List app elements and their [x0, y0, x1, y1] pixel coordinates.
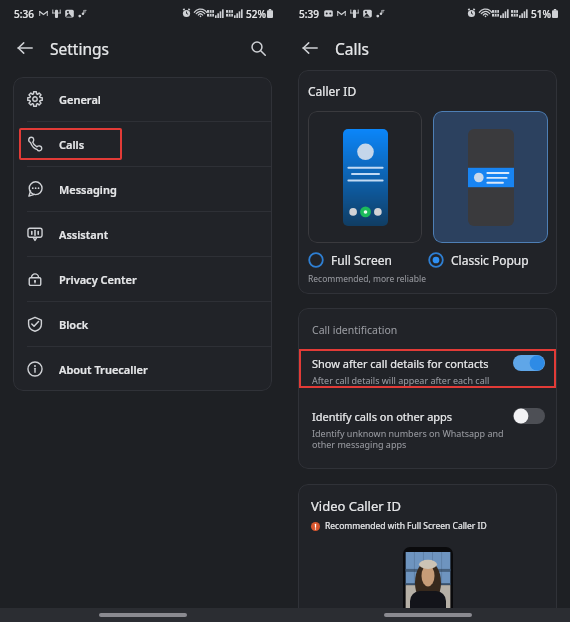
button[interactable]: Back: [10, 33, 40, 63]
staticText: Show after call details for contacts: [312, 356, 489, 371]
staticText: Video Caller ID: [311, 497, 401, 515]
button[interactable]: Full Screen: [308, 252, 428, 268]
staticText: Recommended with Full Screen Caller ID: [325, 520, 487, 532]
button[interactable]: Privacy Center: [13, 257, 272, 302]
staticText: Messaging: [59, 182, 117, 197]
staticText: Identify calls on other apps: [312, 409, 453, 424]
button[interactable]: Assistant: [13, 212, 272, 257]
staticText: About Truecaller: [59, 362, 148, 377]
staticText: Identify unknown numbers on Whatsapp and…: [312, 427, 504, 451]
staticText: Caller ID: [308, 83, 357, 99]
button[interactable]: Messaging: [13, 167, 272, 212]
button[interactable]: General: [13, 77, 272, 122]
staticText: 52%: [246, 7, 266, 21]
staticText: General: [59, 92, 101, 107]
staticText: Calls: [335, 38, 369, 59]
staticText: After call details will appear after eac…: [312, 374, 490, 386]
staticText: Recommended, more reliable: [308, 273, 426, 285]
staticText: Settings: [50, 38, 109, 59]
staticText: 51%: [531, 7, 551, 21]
staticText: Full Screen: [331, 252, 392, 268]
button[interactable]: Identify calls on other apps: [312, 408, 545, 451]
staticText: Classic Popup: [451, 252, 529, 268]
button[interactable]: About Truecaller: [13, 347, 272, 391]
staticText: Call identification: [312, 323, 398, 337]
staticText: 5:36: [14, 7, 34, 21]
button[interactable]: Show after call details for contacts: [312, 355, 545, 386]
staticText: Block: [59, 317, 89, 332]
button[interactable]: Block: [13, 302, 272, 347]
button[interactable]: Search: [243, 33, 273, 63]
button[interactable]: Classic Popup: [428, 252, 548, 268]
staticText: Privacy Center: [59, 272, 137, 287]
staticText: Assistant: [59, 227, 109, 242]
staticText: 5:39: [299, 7, 319, 21]
staticText: Calls: [59, 137, 85, 152]
button[interactable]: Calls: [13, 122, 272, 167]
button[interactable]: Back: [295, 33, 325, 63]
